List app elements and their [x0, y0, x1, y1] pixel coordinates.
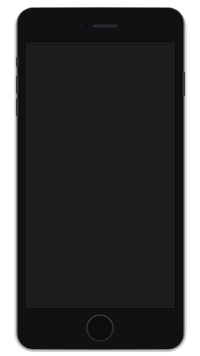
other: Black smartphone device mockup: [0, 0, 200, 356]
